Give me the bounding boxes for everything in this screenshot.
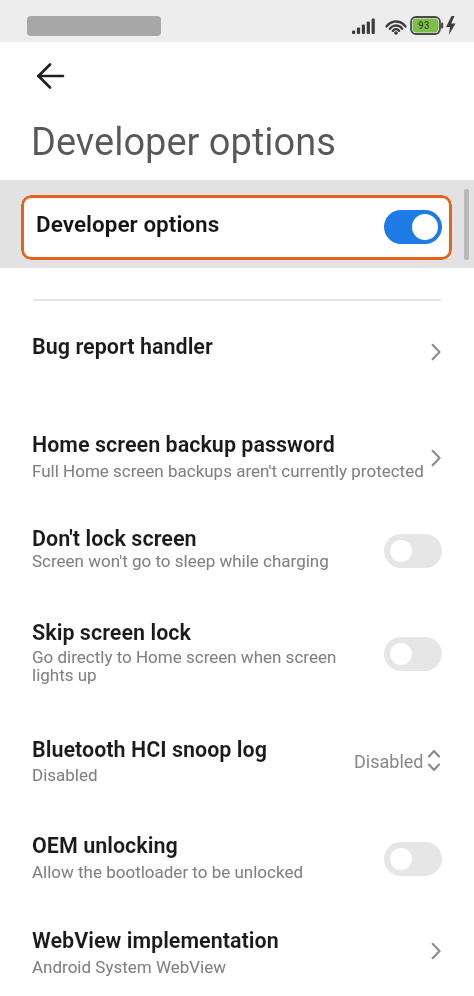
staticText: lights up bbox=[32, 665, 97, 685]
staticText: Android System WebView bbox=[32, 957, 227, 977]
staticText: OEM unlocking bbox=[32, 833, 178, 858]
button[interactable] bbox=[0, 898, 474, 996]
button[interactable] bbox=[0, 311, 474, 394]
staticText: Disabled bbox=[32, 765, 98, 785]
staticText: Bug report handler bbox=[32, 334, 213, 359]
staticText: Full Home screen backups aren't currentl… bbox=[32, 461, 424, 481]
staticText: WebView implementation bbox=[32, 928, 279, 953]
button[interactable] bbox=[26, 52, 74, 100]
button[interactable] bbox=[0, 708, 474, 800]
button[interactable] bbox=[0, 803, 474, 895]
staticText: Developer options bbox=[31, 120, 336, 165]
button[interactable]: Developer options bbox=[21, 195, 452, 260]
staticText: Disabled bbox=[354, 751, 424, 772]
staticText: Screen won't go to sleep while charging bbox=[32, 551, 329, 571]
button[interactable] bbox=[0, 594, 474, 705]
staticText: Allow the bootloader to be unlocked bbox=[32, 862, 303, 882]
staticText: Don't lock screen bbox=[32, 526, 197, 551]
button[interactable] bbox=[384, 534, 442, 568]
button[interactable] bbox=[0, 406, 474, 497]
button[interactable] bbox=[384, 842, 442, 876]
staticText: Bluetooth HCI snoop log bbox=[32, 737, 267, 762]
staticText: Skip screen lock bbox=[32, 620, 192, 645]
staticText: Developer options bbox=[36, 211, 220, 237]
staticText: Go directly to Home screen when screen bbox=[32, 647, 337, 667]
button[interactable] bbox=[384, 637, 442, 671]
button[interactable] bbox=[384, 210, 442, 244]
staticText: Home screen backup password bbox=[32, 432, 335, 457]
button[interactable] bbox=[0, 500, 474, 591]
staticText: 93 bbox=[418, 20, 430, 32]
